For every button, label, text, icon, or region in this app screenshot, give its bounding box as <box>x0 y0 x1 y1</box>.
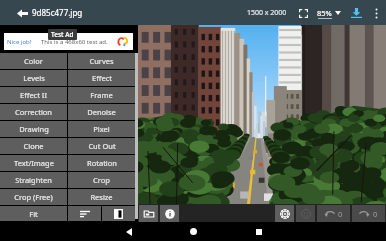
button[interactable]: Frame <box>68 87 135 103</box>
button[interactable]: Home <box>161 222 226 241</box>
button[interactable]: Info <box>160 205 179 222</box>
staticText: Curves <box>89 56 114 66</box>
button[interactable]: 85% <box>316 5 342 21</box>
staticText: Correction <box>15 107 52 117</box>
button[interactable]: Pixel <box>68 121 135 137</box>
button[interactable]: Denoise <box>68 104 135 120</box>
button[interactable]: Back <box>12 3 32 23</box>
button[interactable]: Undo <box>317 205 350 222</box>
staticText: Resize <box>90 192 113 202</box>
staticText: Nice job! <box>7 38 32 46</box>
button[interactable]: Effect II <box>0 87 67 103</box>
staticText: Cut Out <box>88 141 116 151</box>
button[interactable]: Compare <box>102 206 135 221</box>
staticText: Drawing <box>19 124 49 134</box>
staticText: 9d85c477.jpg <box>32 7 83 18</box>
button[interactable]: Back <box>96 222 161 241</box>
button[interactable]: More options <box>368 5 384 21</box>
staticText: Denoise <box>87 107 116 117</box>
staticText: 85% <box>317 8 332 18</box>
button[interactable]: Text/Image <box>0 155 67 171</box>
button[interactable]: Open file <box>139 205 158 222</box>
button[interactable]: Fit to screen <box>295 5 311 21</box>
staticText: Levels <box>23 73 45 83</box>
staticText: Straighten <box>15 175 52 185</box>
staticText: Clone <box>23 141 44 151</box>
button[interactable]: Settings <box>275 205 294 222</box>
staticText: Effect <box>92 73 112 83</box>
staticText: Text/Image <box>14 158 54 168</box>
staticText: Rotation <box>87 158 117 168</box>
button[interactable]: Clone <box>0 138 67 154</box>
button[interactable]: Levels <box>0 70 67 86</box>
button[interactable]: Save <box>348 5 364 21</box>
staticText: Fit <box>29 209 38 219</box>
button[interactable]: Drawing <box>0 121 67 137</box>
button[interactable]: Curves <box>68 53 135 69</box>
button[interactable]: Effects <box>296 205 315 222</box>
button[interactable]: Rotation <box>68 155 135 171</box>
button[interactable]: Crop <box>68 172 135 188</box>
staticText: 0 <box>338 209 343 219</box>
staticText: 1500 x 2000 <box>247 8 287 18</box>
staticText: Crop <box>93 175 110 185</box>
staticText: Frame <box>90 90 113 100</box>
button[interactable]: Correction <box>0 104 67 120</box>
staticText: Crop (Free) <box>14 192 53 202</box>
staticText: Effect II <box>20 90 47 100</box>
button[interactable]: Cut Out <box>68 138 135 154</box>
button[interactable]: Resize <box>68 189 135 205</box>
button[interactable]: Align <box>68 206 101 221</box>
staticText: Test Ad <box>51 30 74 39</box>
button[interactable]: Recent apps <box>226 222 291 241</box>
button[interactable]: Fit <box>0 206 67 221</box>
button[interactable]: Effect <box>68 70 135 86</box>
button[interactable]: Straighten <box>0 172 67 188</box>
button[interactable]: Color <box>0 53 67 69</box>
staticText: 0 <box>373 209 378 219</box>
staticText: This is a 468x60 test ad. <box>41 38 108 46</box>
staticText: Pixel <box>93 124 110 134</box>
button[interactable]: Crop (Free) <box>0 189 67 205</box>
staticText: Color <box>24 56 43 66</box>
button[interactable]: Redo <box>352 205 385 222</box>
